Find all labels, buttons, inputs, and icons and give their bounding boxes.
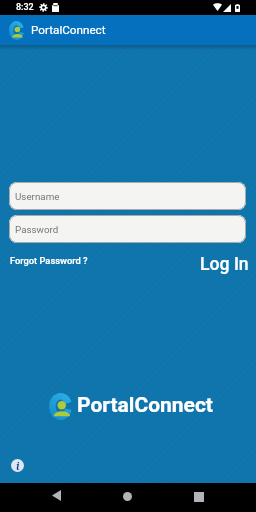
staticText: Password	[15, 224, 59, 235]
staticText: PortalConnect	[77, 393, 213, 418]
button[interactable]: Back	[42, 481, 71, 510]
button[interactable]: Forgot Password ?	[6, 251, 92, 270]
staticText: Username	[15, 191, 60, 202]
button[interactable]: Recent apps	[184, 482, 213, 511]
button[interactable]: Home	[113, 482, 142, 511]
staticText: PortalConnect	[31, 23, 106, 37]
button[interactable]: Information	[11, 459, 24, 472]
button[interactable]: Username	[9, 182, 246, 210]
button[interactable]: Password	[9, 215, 246, 243]
staticText: 8:32	[16, 2, 34, 13]
staticText: i	[16, 459, 20, 472]
button[interactable]: Log In	[196, 250, 253, 279]
